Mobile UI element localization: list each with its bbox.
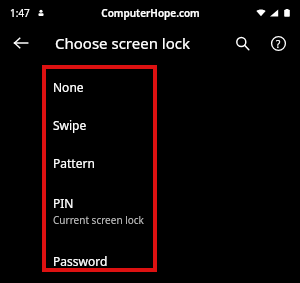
staticText: ?	[276, 37, 281, 51]
button[interactable]: Search	[228, 29, 256, 57]
button[interactable]: Help	[264, 29, 292, 57]
button[interactable]: Back	[8, 30, 34, 56]
button[interactable]: Pattern	[53, 152, 153, 174]
staticText: Current screen lock	[53, 213, 144, 227]
staticText: None	[53, 79, 84, 95]
button[interactable]: Swipe	[53, 114, 153, 136]
staticText: Pattern	[53, 155, 95, 171]
button[interactable]: None	[53, 76, 153, 98]
staticText: 1:47	[10, 6, 30, 20]
staticText: Password	[53, 253, 108, 269]
staticText: Choose screen lock	[55, 33, 190, 53]
staticText: ComputerHope.com	[101, 6, 200, 20]
staticText: Swipe	[53, 117, 87, 133]
staticText: PIN	[53, 195, 74, 211]
button[interactable]: PIN	[53, 195, 153, 227]
button[interactable]: Password	[53, 250, 153, 272]
